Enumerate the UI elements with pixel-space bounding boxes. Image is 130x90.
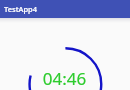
staticText: TestApp4: [4, 4, 38, 14]
button[interactable]: TestApp4: [0, 0, 130, 18]
staticText: 04:46: [0, 67, 129, 90]
